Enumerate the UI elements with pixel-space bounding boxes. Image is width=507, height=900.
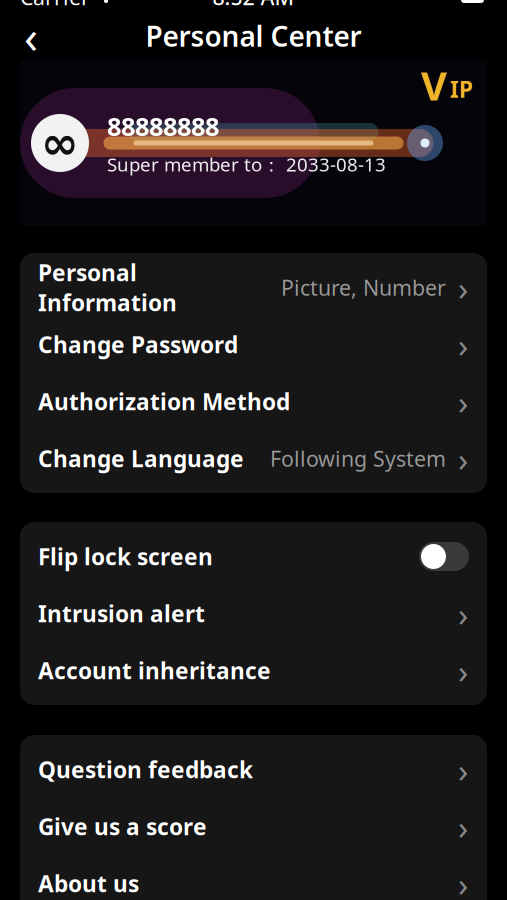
staticText: V [421,58,447,111]
staticText: › [458,265,468,310]
button[interactable]: Authorization Method [20,373,487,430]
button[interactable]: Flip lock screen [20,528,487,585]
staticText: › [458,591,468,636]
button[interactable]: Account inheritance [20,642,487,699]
staticText: › [458,648,468,693]
staticText: About us [38,868,139,898]
staticText: › [458,747,468,792]
staticText: Account inheritance [38,655,271,685]
staticText: IP [450,74,473,104]
button[interactable]: Change Password [20,316,487,373]
button[interactable]: Intrusion alert [20,585,487,642]
staticText: › [458,379,468,424]
staticText: ∞ [41,117,79,169]
staticText: 88888888 [107,109,219,143]
staticText: ‹ [24,6,38,66]
staticText: › [458,861,468,900]
staticText: Picture, Number [281,273,446,302]
staticText: 8:52 AM [212,0,294,11]
button[interactable]: Back [9,14,53,58]
staticText: › [458,436,468,481]
button[interactable]: Personal Information [20,259,487,316]
staticText: Intrusion alert [38,598,205,628]
staticText: Change Language [38,443,244,473]
staticText: › [458,322,468,367]
staticText: Authorization Method [38,386,290,416]
staticText: Give us a score [38,811,207,841]
staticText: › [458,804,468,849]
button[interactable]: About us [20,855,487,900]
button[interactable]: Question feedback [20,741,487,798]
staticText: Following System [270,444,446,473]
staticText: Super member to： 2033-08-13 [107,152,386,177]
button[interactable]: Give us a score [20,798,487,855]
staticText: Personal Information [38,257,177,318]
staticText: Question feedback [38,754,253,784]
staticText: Change Password [38,329,238,359]
button[interactable]: Change Language [20,430,487,487]
staticText: Personal Center [145,17,361,55]
staticText: Flip lock screen [38,541,213,571]
staticText: Carrier [20,0,90,11]
